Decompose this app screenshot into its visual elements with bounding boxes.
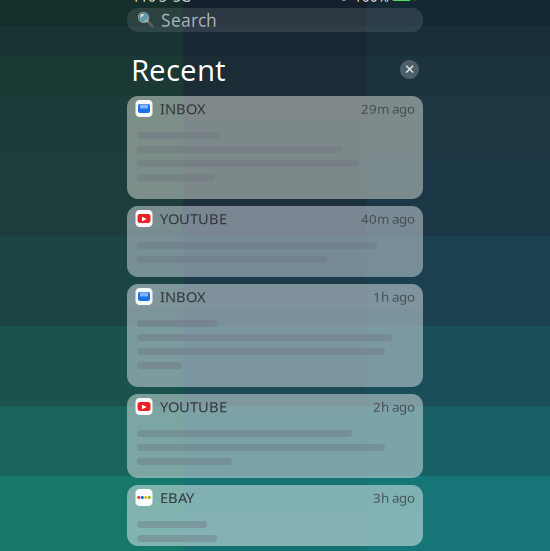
staticText: -116 3: [128, 0, 167, 5]
staticText: 🔍: [137, 12, 155, 28]
button[interactable]: ▶: [127, 394, 423, 478]
staticText: 40m ago: [361, 210, 415, 227]
staticText: INBOX: [160, 99, 206, 118]
staticText: YOUTUBE: [160, 397, 227, 416]
button[interactable]: INBOX: [127, 96, 423, 199]
staticText: 3h ago: [373, 489, 415, 506]
staticText: YOUTUBE: [160, 209, 227, 228]
staticText: Recent: [131, 50, 226, 89]
staticText: 1h ago: [373, 288, 415, 305]
button[interactable]: Clear notifications: [400, 60, 419, 79]
staticText: 29m ago: [361, 100, 415, 117]
staticText: 100%: [351, 0, 389, 5]
button[interactable]: EBAY: [127, 485, 423, 546]
staticText: ☾: [339, 0, 351, 4]
staticText: ✕: [404, 62, 415, 77]
staticText: INBOX: [160, 287, 206, 306]
staticText: ▶: [141, 215, 146, 222]
staticText: ⚡: [412, 0, 422, 1]
staticText: Search: [161, 8, 217, 31]
button[interactable]: INBOX: [127, 284, 423, 387]
staticText: ▶: [141, 403, 146, 410]
staticText: 3G: [167, 0, 191, 5]
staticText: EBAY: [160, 488, 194, 507]
button[interactable]: 🔍: [127, 8, 423, 32]
staticText: 2h ago: [373, 398, 415, 415]
button[interactable]: ▶: [127, 206, 423, 277]
